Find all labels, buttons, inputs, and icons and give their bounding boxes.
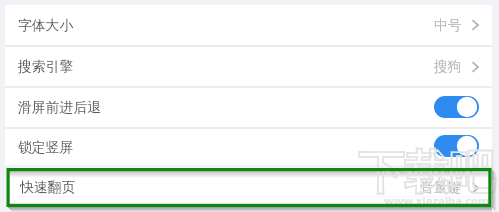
staticText: 字体大小 [18,17,74,34]
button[interactable]: Toggle switch, on [434,135,479,157]
staticText: 滑屏前进后退 [18,99,101,116]
button[interactable]: 快速翻页 [7,168,492,207]
staticText: 快速翻页 [20,179,76,196]
button[interactable]: 搜索引擎 [5,47,492,86]
button[interactable]: 字体大小 [5,5,492,45]
staticText: 音量键 [420,179,462,196]
staticText: 搜狗 [434,58,462,75]
staticText: 中号 [434,17,462,34]
staticText: 锁定竖屏 [18,139,74,156]
button[interactable]: 锁定竖屏 [5,129,492,165]
staticText: 搜索引擎 [18,58,74,75]
button[interactable]: Toggle switch, on [434,96,479,118]
button[interactable]: 滑屏前进后退 [5,88,492,127]
